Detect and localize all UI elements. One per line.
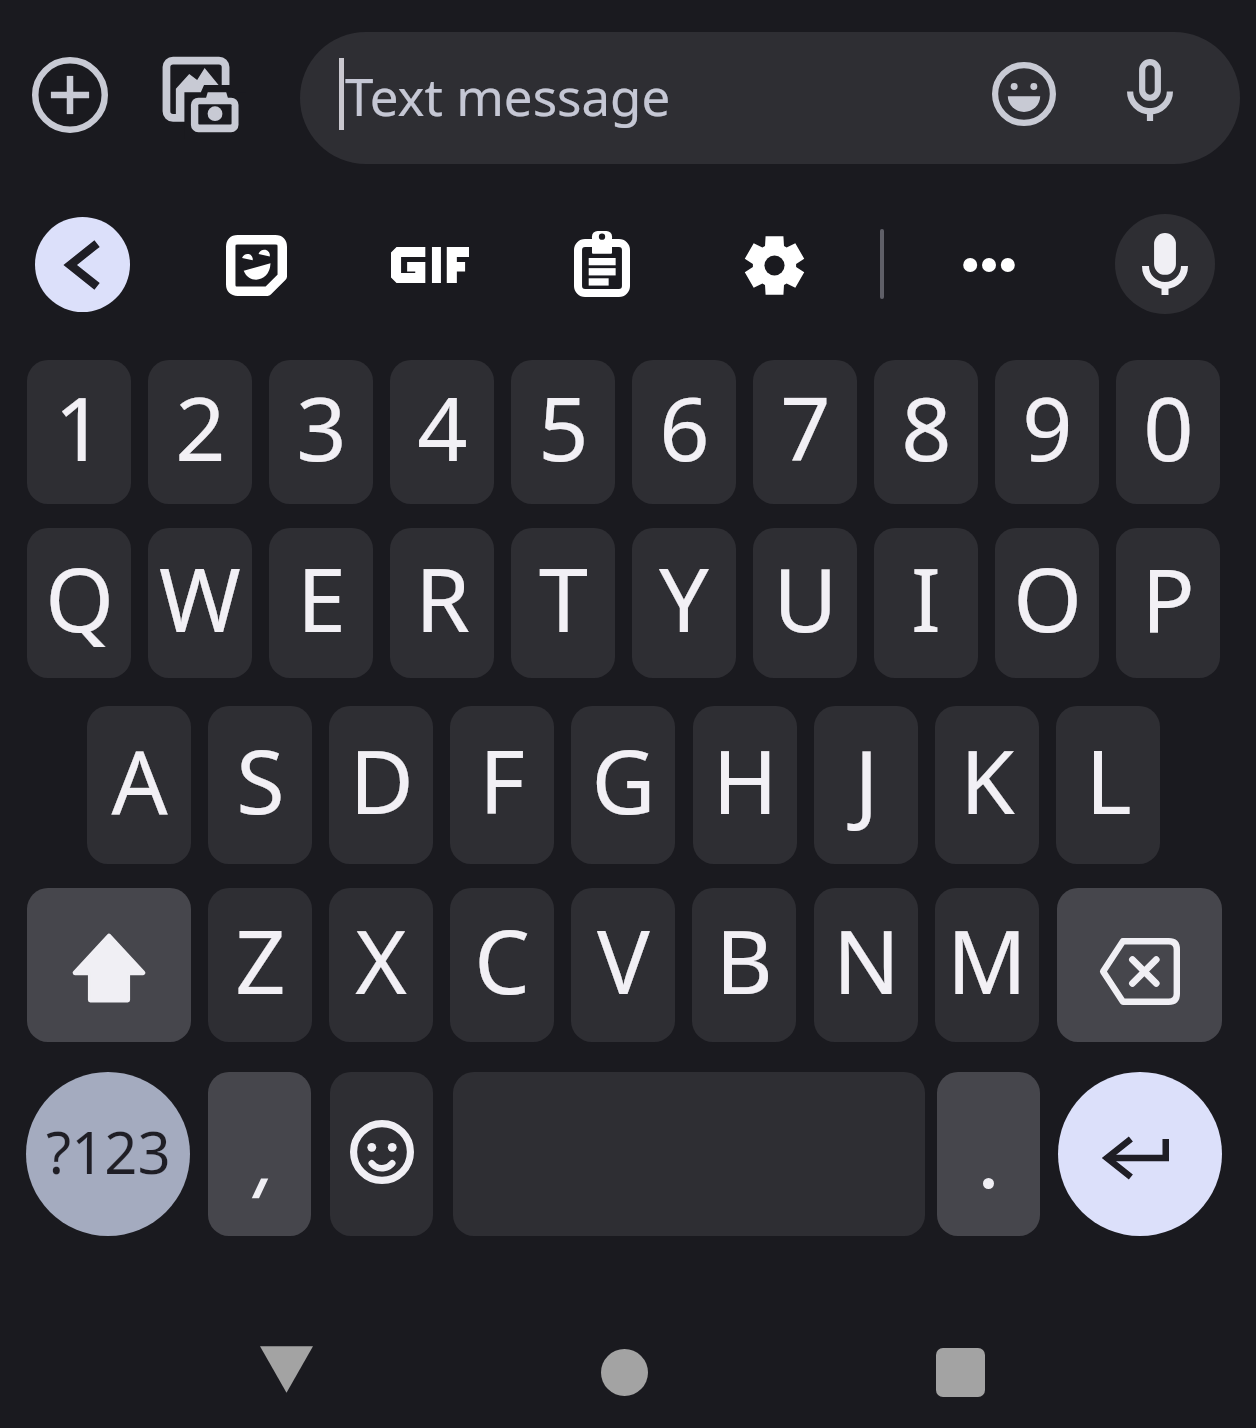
staticText: D	[349, 720, 414, 840]
button[interactable]: Recent apps	[900, 1312, 1020, 1428]
button[interactable]: L	[1056, 706, 1160, 864]
button[interactable]: Shift	[27, 888, 191, 1042]
staticText: ?123	[46, 1112, 171, 1191]
button[interactable]: W	[148, 528, 252, 678]
staticText: 5	[538, 367, 589, 487]
button[interactable]: Clipboard	[555, 218, 649, 312]
staticText: 6	[659, 367, 710, 487]
button[interactable]: Voice typing	[1115, 214, 1215, 314]
button[interactable]: 0	[1116, 360, 1220, 504]
button[interactable]: Emoji	[330, 1072, 433, 1236]
button[interactable]: S	[208, 706, 312, 864]
button[interactable]: ?123	[26, 1072, 190, 1236]
staticText: V	[597, 900, 650, 1020]
staticText: O	[1013, 538, 1082, 658]
button[interactable]: Backspace	[1057, 888, 1222, 1042]
button[interactable]: M	[935, 888, 1039, 1042]
button[interactable]: E	[269, 528, 373, 678]
button[interactable]: GIF	[383, 218, 477, 312]
button[interactable]: B	[692, 888, 796, 1042]
button[interactable]: 1	[27, 360, 131, 504]
button[interactable]: Period	[937, 1072, 1040, 1236]
button[interactable]: U	[753, 528, 857, 678]
staticText: T	[539, 538, 588, 658]
staticText: Text message	[345, 61, 671, 130]
staticText: F	[479, 720, 525, 840]
button[interactable]: R	[390, 528, 494, 678]
staticText: P	[1141, 538, 1195, 658]
button[interactable]: 7	[753, 360, 857, 504]
staticText: 7	[780, 367, 831, 487]
staticText: U	[773, 538, 838, 658]
staticText: C	[474, 900, 530, 1020]
staticText: J	[854, 720, 879, 840]
staticText: S	[236, 720, 285, 840]
button[interactable]: T	[511, 528, 615, 678]
staticText: Y	[659, 538, 709, 658]
button[interactable]: Back	[35, 217, 130, 312]
staticText: K	[960, 720, 1015, 840]
button[interactable]: G	[571, 706, 675, 864]
button[interactable]: Settings	[727, 218, 821, 312]
button[interactable]: K	[935, 706, 1039, 864]
staticText: X	[355, 900, 407, 1020]
button[interactable]: F	[450, 706, 554, 864]
button[interactable]: Comma	[208, 1072, 311, 1236]
button[interactable]: X	[329, 888, 433, 1042]
button[interactable]: 5	[511, 360, 615, 504]
button[interactable]: Voice input	[1104, 48, 1196, 140]
button[interactable]: Back	[226, 1309, 346, 1428]
staticText: H	[712, 720, 778, 840]
button[interactable]: Stickers	[209, 218, 303, 312]
staticText: 0	[1143, 367, 1194, 487]
button[interactable]: O	[995, 528, 1099, 678]
staticText: Z	[235, 900, 286, 1020]
staticText: L	[1085, 720, 1132, 840]
button[interactable]: H	[693, 706, 797, 864]
button[interactable]: Enter	[1058, 1072, 1222, 1236]
button[interactable]: Photos and camera	[157, 50, 247, 140]
button[interactable]: P	[1116, 528, 1220, 678]
staticText: A	[111, 720, 168, 840]
button[interactable]: 8	[874, 360, 978, 504]
button[interactable]: Q	[27, 528, 131, 678]
button[interactable]: 6	[632, 360, 736, 504]
staticText: 4	[417, 367, 468, 487]
button[interactable]: Home	[564, 1312, 684, 1428]
staticText: G	[591, 720, 656, 840]
staticText: E	[297, 538, 346, 658]
button[interactable]: 2	[148, 360, 252, 504]
button[interactable]: C	[450, 888, 554, 1042]
staticText: M	[947, 900, 1027, 1020]
staticText: Q	[45, 538, 114, 658]
button[interactable]: 4	[390, 360, 494, 504]
button[interactable]: A	[87, 706, 191, 864]
button[interactable]: 3	[269, 360, 373, 504]
staticText: 3	[296, 367, 347, 487]
button[interactable]: N	[814, 888, 918, 1042]
button[interactable]: Emoji	[978, 48, 1070, 140]
staticText: N	[833, 900, 900, 1020]
staticText: R	[415, 538, 470, 658]
staticText: I	[911, 538, 941, 658]
button[interactable]: V	[571, 888, 675, 1042]
button[interactable]: Add attachment	[20, 45, 120, 145]
button[interactable]: Z	[208, 888, 312, 1042]
staticText: W	[159, 538, 241, 658]
staticText: B	[715, 900, 773, 1020]
button[interactable]: Y	[632, 528, 736, 678]
button[interactable]	[300, 32, 1240, 164]
button[interactable]: I	[874, 528, 978, 678]
staticText: 9	[1022, 367, 1073, 487]
staticText: 2	[175, 367, 226, 487]
button[interactable]: J	[814, 706, 918, 864]
button[interactable]: D	[329, 706, 433, 864]
button[interactable]: 9	[995, 360, 1099, 504]
staticText: 1	[54, 367, 105, 487]
button[interactable]: More options	[942, 218, 1036, 312]
staticText: 8	[901, 367, 952, 487]
